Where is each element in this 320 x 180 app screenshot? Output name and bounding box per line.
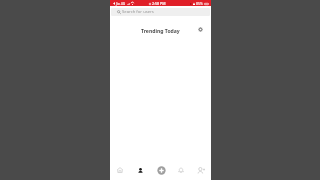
staticText: 2:58 PM bbox=[152, 1, 166, 6]
button[interactable]: Profile bbox=[130, 160, 150, 180]
staticText: 85% bbox=[196, 1, 203, 6]
button[interactable]: Search for users bbox=[111, 8, 210, 16]
staticText: Trending Today bbox=[141, 28, 180, 35]
button[interactable]: Add post bbox=[151, 160, 171, 180]
button[interactable]: Notifications bbox=[171, 160, 191, 180]
staticText: Search for users bbox=[122, 9, 154, 15]
staticText: Jio 4G bbox=[116, 1, 126, 6]
button[interactable]: Settings bbox=[195, 24, 205, 34]
button[interactable]: Find friends bbox=[191, 160, 211, 180]
button[interactable]: Home bbox=[110, 160, 130, 180]
